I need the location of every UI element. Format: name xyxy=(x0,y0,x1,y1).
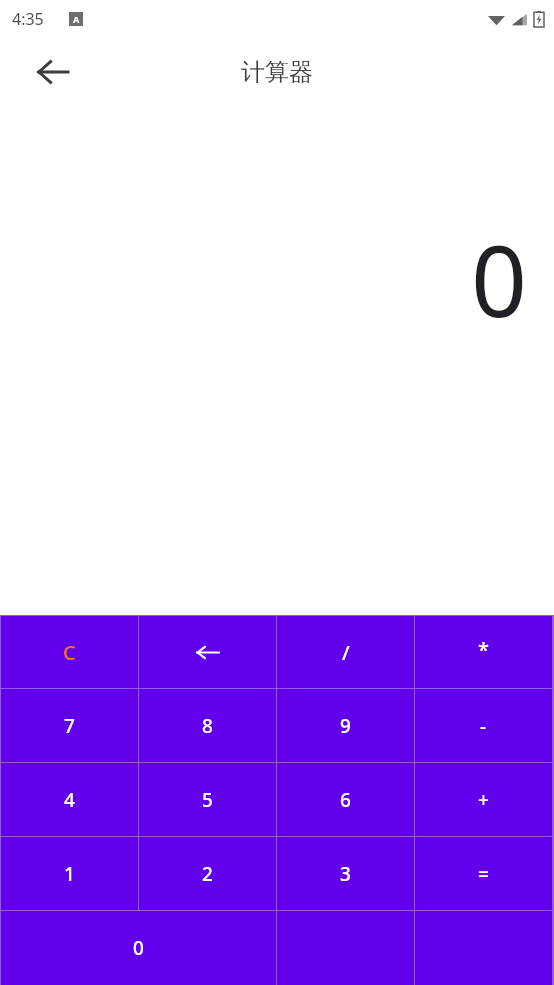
button[interactable]: 9 xyxy=(277,689,414,762)
staticText: 0 xyxy=(471,212,528,345)
button[interactable]: 5 xyxy=(139,763,276,836)
button[interactable]: 7 xyxy=(1,689,138,762)
staticText: 3 xyxy=(340,861,351,887)
button[interactable]: = xyxy=(415,837,552,910)
staticText: C xyxy=(63,639,76,666)
staticText: 1 xyxy=(64,861,75,887)
button[interactable]: 4 xyxy=(1,763,138,836)
staticText: + xyxy=(478,787,489,813)
button[interactable]: 1 xyxy=(1,837,138,910)
staticText: = xyxy=(478,861,489,887)
button[interactable]: - xyxy=(415,689,552,762)
button[interactable]: 0 xyxy=(1,911,276,985)
staticText: * xyxy=(478,636,489,663)
button[interactable]: 6 xyxy=(277,763,414,836)
staticText: 7 xyxy=(64,713,75,739)
staticText: 8 xyxy=(202,713,213,739)
staticText: - xyxy=(480,713,487,739)
staticText: 9 xyxy=(340,713,351,739)
button[interactable]: Back xyxy=(29,48,77,96)
staticText: 4:35 xyxy=(12,8,44,30)
button[interactable]: Backspace xyxy=(139,616,276,688)
staticText: A xyxy=(73,13,80,25)
button[interactable]: 2 xyxy=(139,837,276,910)
button[interactable]: / xyxy=(277,616,414,688)
staticText: 6 xyxy=(340,787,351,813)
staticText: 0 xyxy=(133,935,144,961)
button[interactable]: + xyxy=(415,763,552,836)
staticText: 5 xyxy=(202,787,213,813)
button[interactable]: * xyxy=(415,616,552,688)
button[interactable]: 3 xyxy=(277,837,414,910)
button[interactable]: 8 xyxy=(139,689,276,762)
button[interactable]: C xyxy=(1,616,138,688)
staticText: / xyxy=(342,639,350,666)
staticText: 计算器 xyxy=(241,57,313,87)
staticText: 2 xyxy=(202,861,213,887)
staticText: 4 xyxy=(64,787,75,813)
